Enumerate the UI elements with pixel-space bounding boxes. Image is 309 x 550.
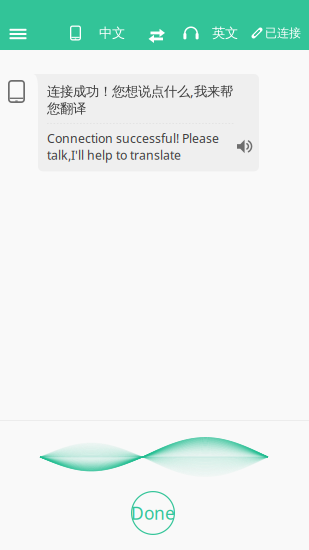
button[interactable]: Swap languages [144,20,168,46]
button[interactable]: Audio [180,20,202,46]
staticText: 已连接 [265,25,301,40]
staticText: 英文 [212,25,238,41]
staticText: Connection successful! Please talk,I'll … [47,130,219,163]
staticText: 连接成功！您想说点什么,我来帮您翻译 [47,82,233,117]
staticText: Done [131,501,175,525]
button[interactable]: Menu [1,19,35,49]
button[interactable]: 已连接 [252,20,304,46]
button[interactable]: 中文 [70,19,128,47]
button[interactable]: Done [131,491,175,535]
button[interactable]: 英文 [212,19,242,47]
staticText: 中文 [99,25,125,41]
